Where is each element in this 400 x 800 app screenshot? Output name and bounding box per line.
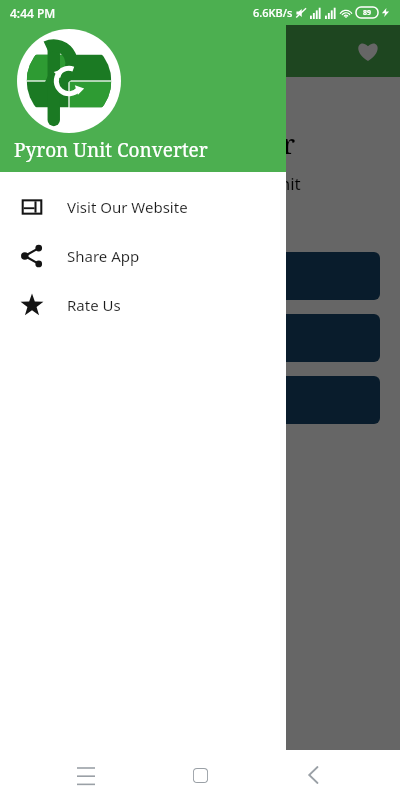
button[interactable]: Rate Us [0, 280, 286, 329]
staticText: This is a tool where you can do unit con… [20, 172, 380, 218]
staticText: Visit Our Website [67, 197, 188, 217]
staticText: Pyron Unit Converter [14, 137, 208, 163]
button[interactable]: Length [20, 252, 380, 300]
button[interactable]: Recents [58, 750, 114, 800]
button[interactable]: Visit Our Website [0, 182, 286, 231]
button[interactable]: Back [286, 750, 342, 800]
staticText: Share App [67, 246, 140, 266]
staticText: Rate Us [67, 295, 121, 315]
staticText: 89 [363, 8, 372, 18]
staticText: 6.6KB/s [253, 5, 293, 20]
staticText: 4:44 PM [10, 5, 56, 21]
button[interactable]: Share App [0, 231, 286, 280]
button[interactable]: Favorite [348, 31, 388, 71]
button[interactable]: Weight [20, 314, 380, 362]
button[interactable]: Temperature [20, 376, 380, 424]
staticText: Pyron Unit Converter [20, 125, 296, 162]
button[interactable]: Home [172, 750, 228, 800]
